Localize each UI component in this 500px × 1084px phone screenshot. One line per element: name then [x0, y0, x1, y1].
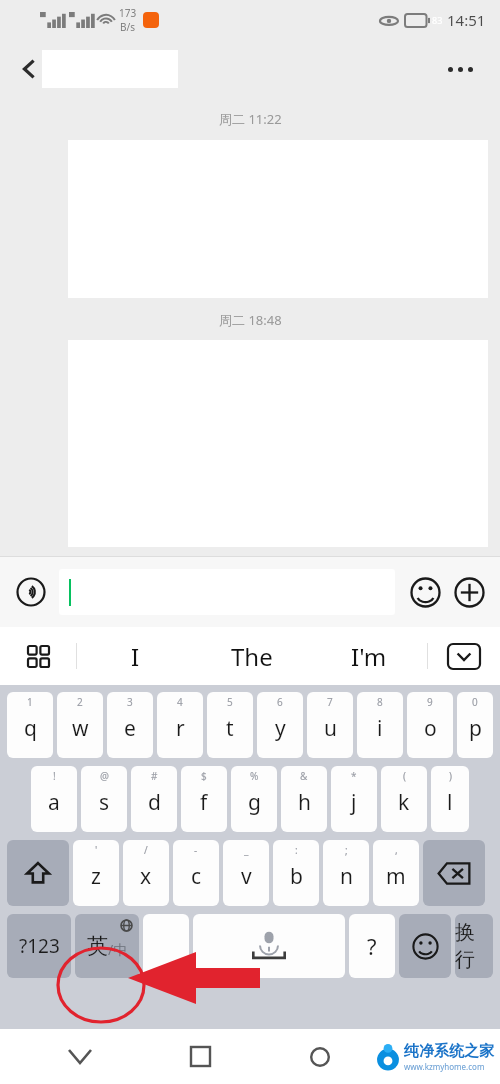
button[interactable]: /: [123, 840, 169, 906]
staticText: 4: [177, 695, 183, 709]
button[interactable]: 6: [257, 692, 303, 758]
staticText: 换行: [455, 920, 493, 972]
staticText: 6: [277, 695, 283, 709]
staticText: 1: [27, 695, 33, 709]
staticText: s: [99, 788, 110, 817]
staticText: 3: [127, 695, 133, 709]
button[interactable]: (: [381, 766, 427, 832]
button[interactable]: I: [77, 627, 193, 685]
button[interactable]: Space: [193, 914, 345, 978]
button[interactable]: 2: [57, 692, 103, 758]
staticText: /中: [108, 940, 128, 959]
staticText: c: [191, 862, 202, 891]
button[interactable]: &: [281, 766, 327, 832]
button[interactable]: -: [173, 840, 219, 906]
button[interactable]: #: [131, 766, 177, 832]
staticText: $: [201, 769, 207, 783]
staticText: d: [148, 788, 161, 817]
button[interactable]: 0: [457, 692, 493, 758]
staticText: ;: [345, 843, 348, 857]
button[interactable]: Voice input: [11, 572, 51, 612]
staticText: o: [424, 714, 437, 743]
staticText: #: [151, 769, 158, 783]
button[interactable]: 7: [307, 692, 353, 758]
button[interactable]: I'm: [310, 627, 427, 685]
button[interactable]: 英: [75, 914, 139, 978]
button[interactable]: Emoji keyboard: [399, 914, 451, 978]
staticText: m: [386, 862, 406, 891]
staticText: u: [324, 714, 337, 743]
staticText: k: [398, 788, 410, 817]
staticText: www.kzmyhome.com: [404, 1061, 485, 1072]
staticText: a: [48, 788, 60, 817]
button[interactable]: Backspace: [423, 840, 485, 906]
button[interactable]: More functions: [449, 572, 489, 612]
button[interactable]: More options: [438, 47, 482, 91]
staticText: :: [295, 843, 298, 857]
staticText: 83: [432, 14, 443, 26]
staticText: i: [377, 714, 383, 743]
button[interactable]: 8: [357, 692, 403, 758]
button[interactable]: [143, 914, 189, 978]
button[interactable]: 换行: [455, 914, 493, 978]
button[interactable]: ): [431, 766, 469, 832]
button[interactable]: ;: [323, 840, 369, 906]
staticText: ': [95, 843, 98, 857]
button[interactable]: 1: [7, 692, 53, 758]
button[interactable]: Keyboard menu: [0, 627, 76, 685]
button[interactable]: Home: [260, 1029, 380, 1084]
button[interactable]: Back: [8, 47, 52, 91]
button[interactable]: 9: [407, 692, 453, 758]
other: Shift: [7, 840, 69, 906]
staticText: 173: [119, 6, 137, 20]
staticText: n: [340, 862, 353, 891]
button[interactable]: *: [331, 766, 377, 832]
staticText: j: [351, 788, 357, 817]
button[interactable]: ': [73, 840, 119, 906]
staticText: B/s: [120, 20, 136, 34]
staticText: 5: [227, 695, 233, 709]
button[interactable]: Hide keyboard: [20, 1029, 140, 1084]
button[interactable]: 3: [107, 692, 153, 758]
button[interactable]: :: [273, 840, 319, 906]
button[interactable]: $: [181, 766, 227, 832]
staticText: %: [250, 769, 259, 783]
staticText: z: [91, 862, 101, 891]
staticText: b: [290, 862, 303, 891]
button[interactable]: %: [231, 766, 277, 832]
staticText: ,: [395, 843, 398, 857]
staticText: 周二 11:22: [219, 110, 282, 128]
staticText: 7: [327, 695, 333, 709]
button[interactable]: _: [223, 840, 269, 906]
button[interactable]: 4: [157, 692, 203, 758]
staticText: I'm: [351, 640, 387, 673]
other: Emoji keyboard: [399, 914, 451, 978]
button[interactable]: Shift: [7, 840, 69, 906]
button[interactable]: @: [81, 766, 127, 832]
staticText: 0: [472, 695, 478, 709]
button[interactable]: !: [31, 766, 77, 832]
staticText: 14:51: [447, 10, 486, 30]
staticText: f: [200, 788, 208, 817]
button[interactable]: ?: [349, 914, 395, 978]
staticText: _: [244, 843, 249, 857]
button[interactable]: 5: [207, 692, 253, 758]
button[interactable]: Emoji: [405, 572, 445, 612]
staticText: 周二 18:48: [219, 311, 282, 329]
button[interactable]: Hide keyboard: [428, 627, 500, 685]
staticText: h: [298, 788, 311, 817]
button[interactable]: ?123: [7, 914, 71, 978]
button[interactable]: Recents: [140, 1029, 260, 1084]
staticText: g: [248, 788, 261, 817]
button[interactable]: The: [193, 627, 310, 685]
staticText: !: [53, 769, 56, 783]
staticText: @: [100, 769, 109, 783]
staticText: 纯净系统之家: [404, 1042, 494, 1061]
other: Space: [193, 914, 345, 978]
button[interactable]: ,: [373, 840, 419, 906]
staticText: v: [241, 862, 252, 891]
button[interactable]: [59, 569, 395, 615]
other: Backspace: [423, 840, 485, 906]
